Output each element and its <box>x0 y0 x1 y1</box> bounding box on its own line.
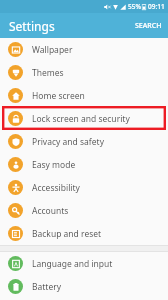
button[interactable]: Accessibility <box>0 176 168 199</box>
button[interactable]: Privacy and safety <box>0 130 168 153</box>
other: Backup and reset <box>8 226 23 241</box>
staticText: Home screen <box>32 90 85 102</box>
staticText: 55% <box>128 2 141 11</box>
button[interactable]: Themes <box>0 61 168 84</box>
staticText: Accessibility <box>32 182 80 194</box>
other: Language and input <box>8 256 23 271</box>
button[interactable]: Lock screen and security <box>0 107 168 130</box>
button[interactable]: Battery <box>0 275 168 298</box>
staticText: Battery <box>32 281 62 293</box>
button[interactable]: Backup and reset <box>0 222 168 245</box>
button[interactable]: Language and input <box>0 252 168 275</box>
button[interactable]: SEARCH <box>129 15 168 37</box>
other: Wallpaper <box>8 42 23 57</box>
other: Easy mode <box>8 157 23 172</box>
staticText: Easy mode <box>32 159 76 171</box>
button[interactable]: Wallpaper <box>0 38 168 61</box>
other: Accessibility <box>8 180 23 195</box>
other: Lock screen and security <box>8 111 23 126</box>
other: Battery <box>8 279 23 294</box>
staticText: Settings <box>9 18 55 34</box>
staticText: Lock screen and security <box>32 113 130 125</box>
staticText: SEARCH <box>135 21 162 31</box>
staticText: Wallpaper <box>32 44 73 56</box>
staticText: Accounts <box>32 205 69 217</box>
other: Privacy and safety <box>8 134 23 149</box>
other: Home screen <box>8 88 23 103</box>
staticText: Backup and reset <box>32 228 102 240</box>
button[interactable]: Home screen <box>0 84 168 107</box>
staticText: 09:11 <box>148 2 165 11</box>
button[interactable]: Easy mode <box>0 153 168 176</box>
staticText: Language and input <box>32 258 113 270</box>
staticText: Themes <box>32 67 64 79</box>
staticText: Privacy and safety <box>32 136 104 148</box>
other: Themes <box>8 65 23 80</box>
button[interactable]: Accounts <box>0 199 168 222</box>
other: Accounts <box>8 203 23 218</box>
